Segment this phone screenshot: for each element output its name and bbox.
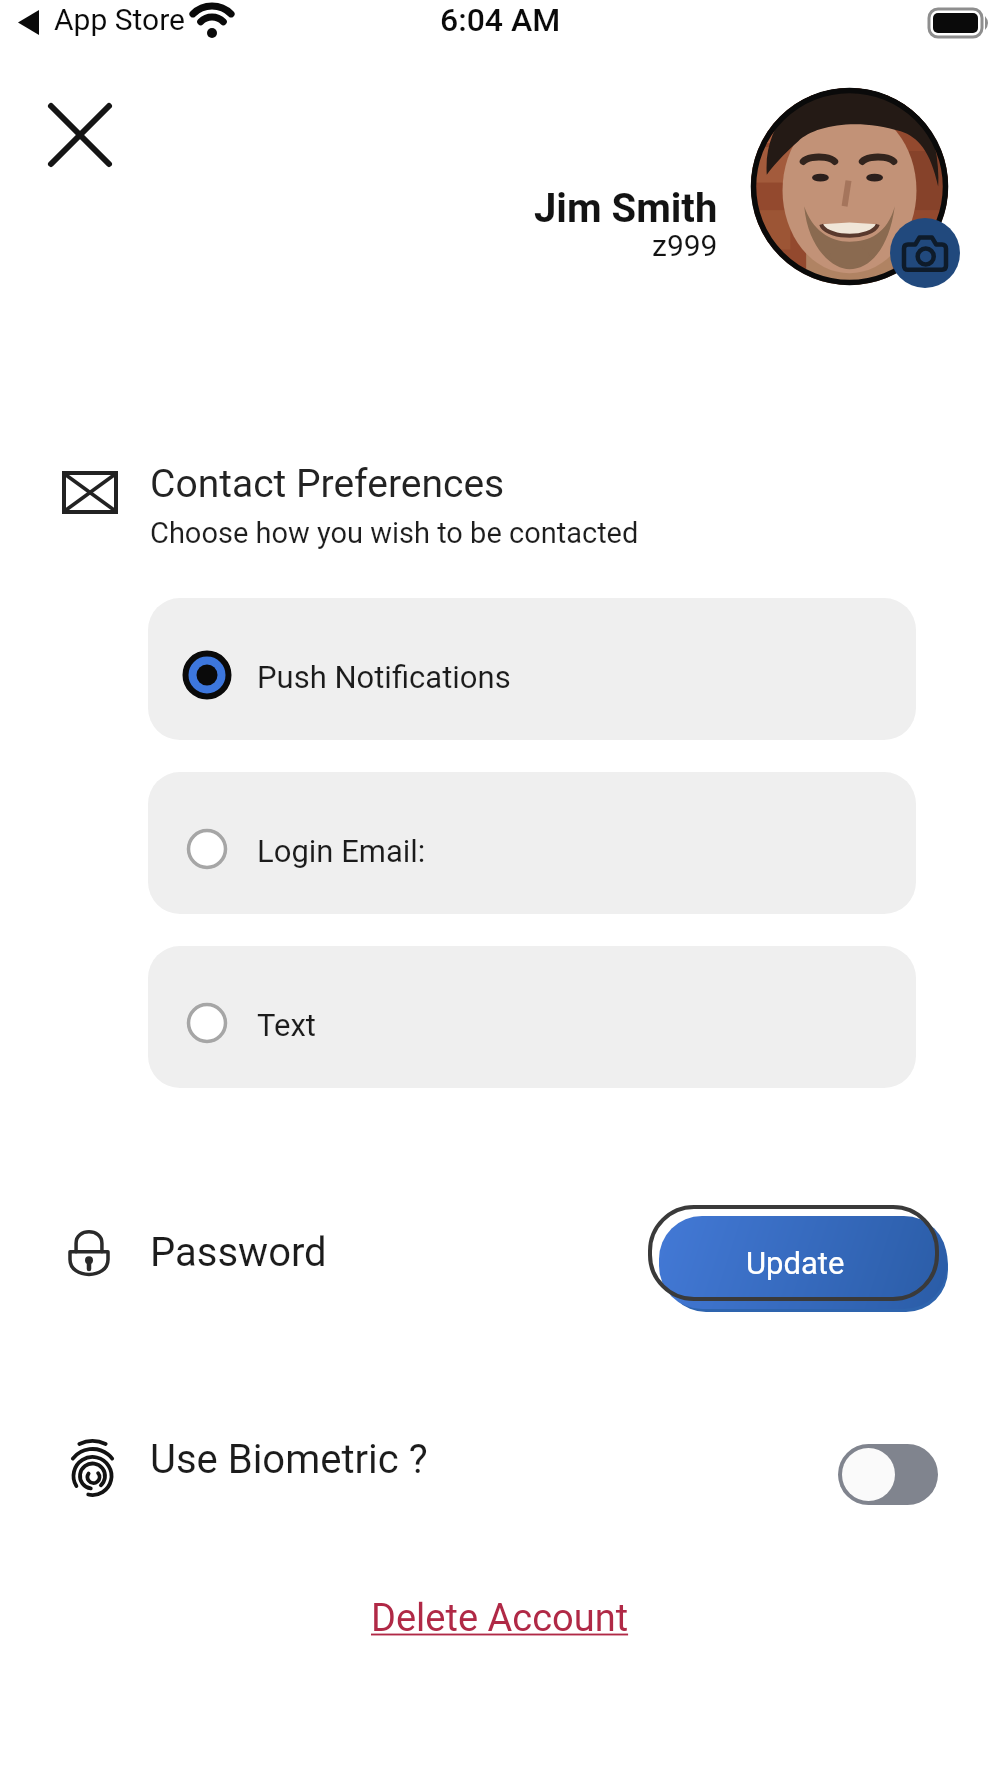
button[interactable] <box>838 1444 938 1505</box>
staticText: Push Notifications <box>257 659 511 695</box>
staticText: Choose how you wish to be contacted <box>150 516 639 550</box>
button[interactable]: App Store <box>54 2 185 37</box>
staticText: Update <box>746 1245 845 1281</box>
staticText: 6:04 AM <box>440 1 561 39</box>
staticText: Text <box>257 1007 316 1043</box>
staticText: Jim Smith <box>534 185 718 232</box>
staticText: Contact Preferences <box>150 461 505 507</box>
button[interactable]: Delete Account <box>371 1596 629 1641</box>
button[interactable]: Update <box>659 1216 947 1309</box>
button[interactable]: Login Email: <box>148 772 916 914</box>
staticText: Login Email: <box>257 833 426 869</box>
staticText: z999 <box>652 228 718 263</box>
button[interactable]: Text <box>148 946 916 1088</box>
button[interactable] <box>751 88 948 285</box>
button[interactable] <box>44 99 116 171</box>
button[interactable]: Push Notifications <box>148 598 916 740</box>
staticText: Use Biometric ? <box>150 1436 428 1483</box>
staticText: Password <box>150 1229 327 1276</box>
button[interactable] <box>890 218 960 288</box>
